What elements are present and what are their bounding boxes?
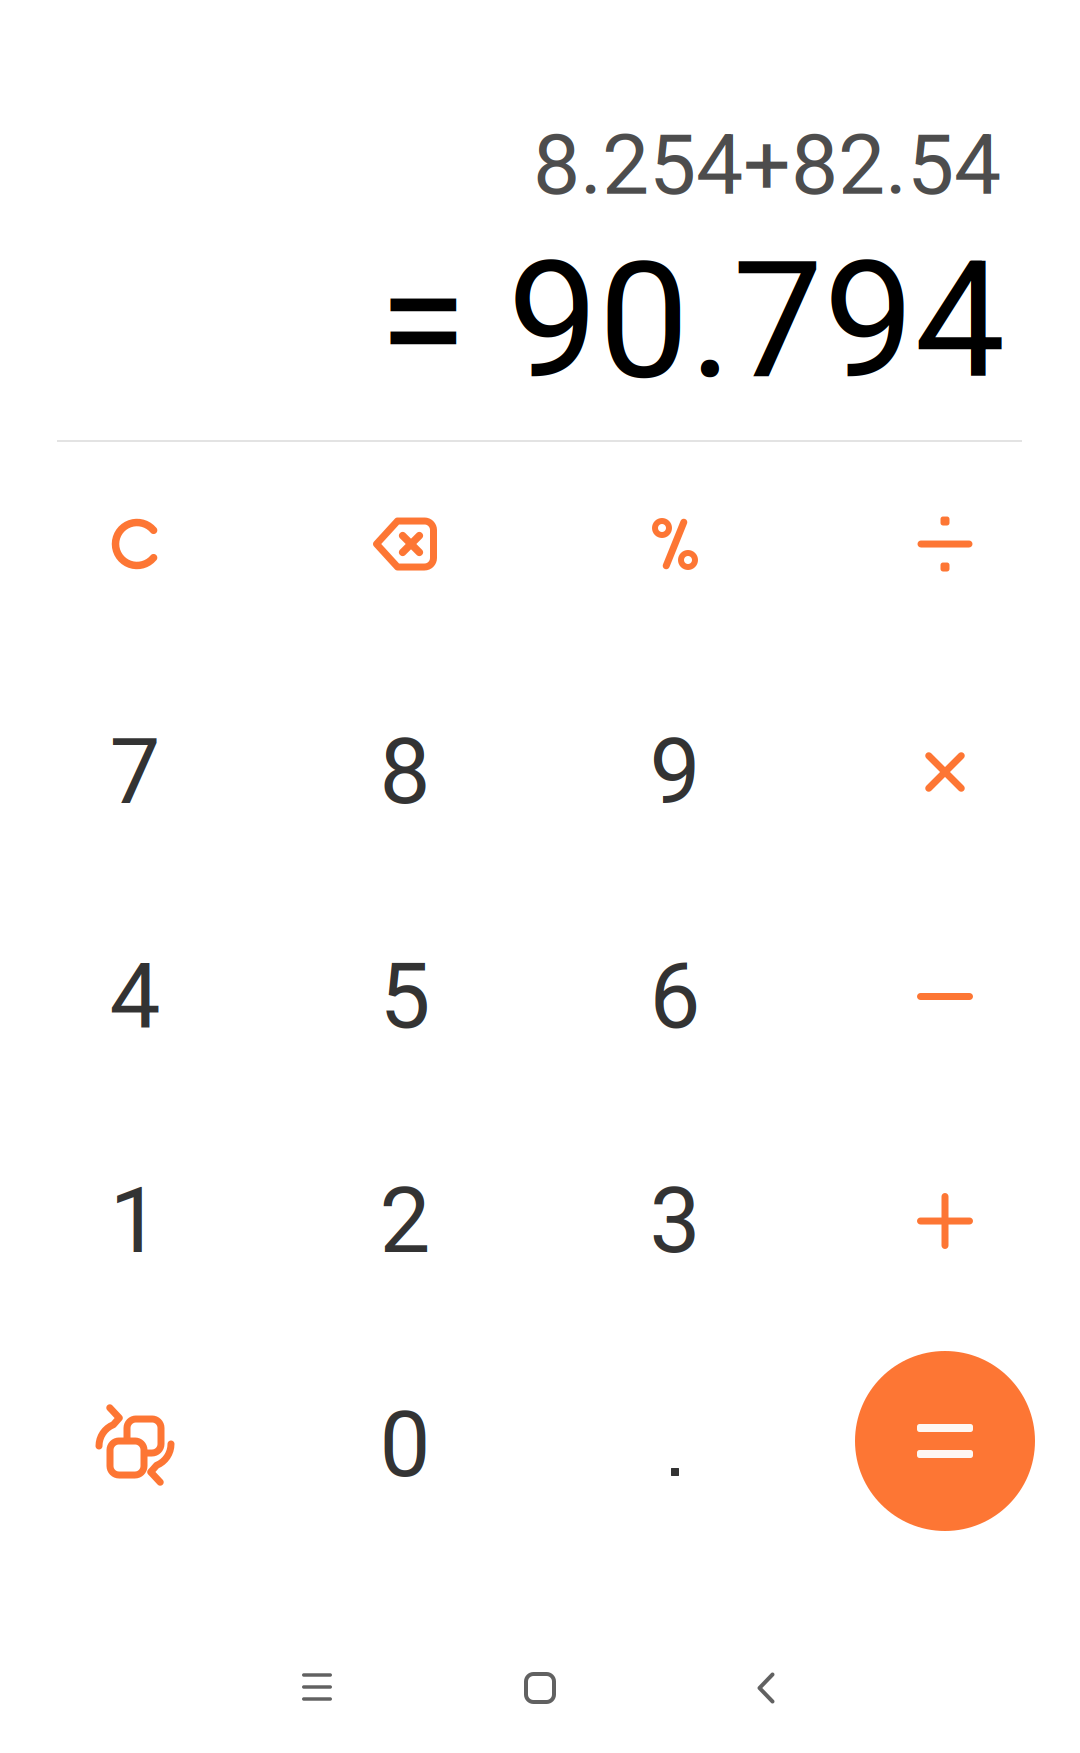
staticText: 2 bbox=[379, 1168, 430, 1274]
button[interactable]: 4 bbox=[0, 884, 270, 1108]
staticText: 3 bbox=[649, 1168, 700, 1274]
staticText: 9 bbox=[649, 719, 700, 825]
staticText: 5 bbox=[379, 943, 430, 1050]
button[interactable]: Minus bbox=[810, 884, 1080, 1108]
button[interactable]: Percent bbox=[540, 432, 810, 656]
button[interactable]: 6 bbox=[540, 884, 810, 1108]
staticText: 8 bbox=[379, 719, 430, 825]
staticText: 1 bbox=[109, 1168, 160, 1274]
button[interactable]: 8 bbox=[270, 660, 540, 884]
staticText: 0 bbox=[379, 1392, 430, 1498]
button[interactable]: Unit converter bbox=[0, 1333, 270, 1557]
staticText: 4 bbox=[109, 943, 160, 1050]
button[interactable]: 3 bbox=[540, 1109, 810, 1333]
button[interactable]: Divide bbox=[810, 432, 1080, 656]
button[interactable]: Back bbox=[691, 1633, 841, 1743]
staticText: 7 bbox=[109, 719, 160, 825]
button[interactable]: 0 bbox=[270, 1333, 540, 1557]
button[interactable]: 9 bbox=[540, 660, 810, 884]
button[interactable]: Recents bbox=[242, 1632, 392, 1742]
button[interactable]: Home bbox=[465, 1633, 615, 1743]
staticText: 6 bbox=[649, 943, 700, 1050]
button[interactable]: 7 bbox=[0, 660, 270, 884]
button[interactable]: 2 bbox=[270, 1109, 540, 1333]
staticText: 8.254+82.54 bbox=[533, 116, 1001, 214]
button[interactable]: Decimal point bbox=[540, 1333, 810, 1557]
button[interactable]: Multiply bbox=[810, 660, 1080, 884]
button[interactable]: Plus bbox=[810, 1109, 1080, 1333]
staticText: = 90.794 bbox=[378, 226, 1005, 416]
button[interactable]: Equals bbox=[810, 1329, 1080, 1553]
button[interactable]: Clear bbox=[0, 432, 270, 656]
button[interactable]: 5 bbox=[270, 884, 540, 1108]
button[interactable]: Backspace bbox=[270, 432, 540, 656]
button[interactable]: 1 bbox=[0, 1109, 270, 1333]
